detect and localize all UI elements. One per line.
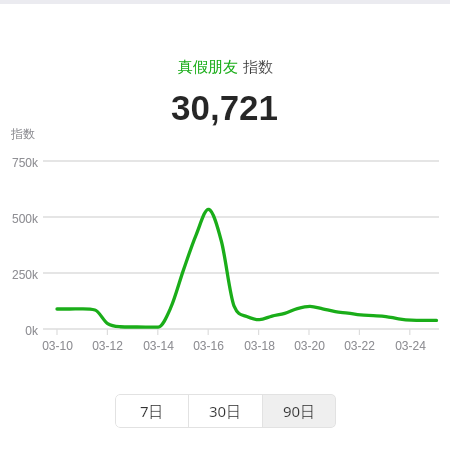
staticText: 指数 (243, 58, 273, 77)
button[interactable]: 7日 (115, 394, 188, 428)
staticText: 0k (25, 324, 38, 337)
staticText: 03-14 (143, 339, 174, 352)
staticText: 03-18 (244, 339, 275, 352)
staticText: 03-16 (193, 339, 224, 352)
staticText: 03-20 (294, 339, 325, 352)
staticText: 真假朋友 (178, 58, 238, 77)
staticText: 03-12 (92, 339, 123, 352)
staticText: 30日 (209, 401, 242, 421)
staticText: 250k (11, 268, 38, 281)
staticText: 指数 (11, 126, 35, 141)
staticText: 30,721 (171, 88, 279, 127)
staticText: 500k (11, 212, 38, 225)
staticText: 7日 (140, 401, 164, 421)
staticText: 90日 (283, 401, 316, 421)
staticText: 750k (11, 156, 38, 169)
staticText: 03-10 (42, 339, 73, 352)
button[interactable]: 30日 (189, 394, 262, 428)
button[interactable]: 90日 (263, 394, 336, 428)
staticText: 03-22 (344, 339, 375, 352)
staticText: 03-24 (395, 339, 426, 352)
